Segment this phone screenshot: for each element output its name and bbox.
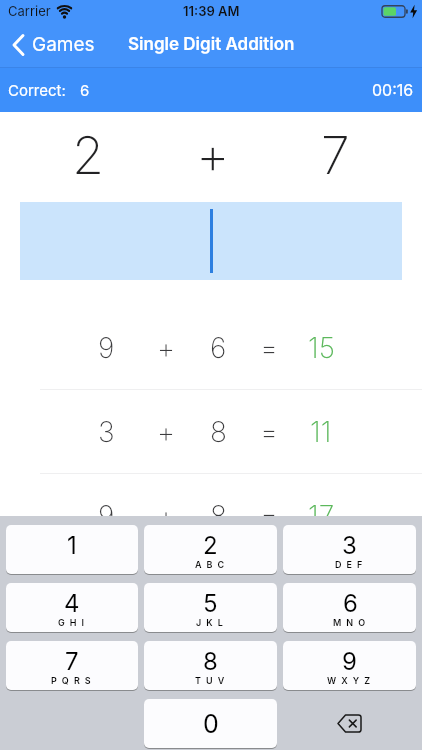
staticText: P Q R S [51,675,93,686]
staticText: 11 [310,415,332,449]
button[interactable]: 5 [144,583,277,632]
staticText: 8 [203,647,218,676]
button[interactable]: 3 [283,525,416,574]
staticText: + [157,415,176,449]
staticText: 9 [98,331,115,365]
button[interactable]: 6 [283,583,416,632]
button[interactable] [283,699,416,748]
button[interactable]: 4 [6,583,138,632]
staticText: T U V [195,675,226,686]
staticText: M N O [333,617,367,628]
staticText: 0 [203,709,219,739]
button[interactable] [20,202,402,280]
button[interactable]: 2 [144,525,277,574]
staticText: 7 [321,124,350,187]
staticText: 3 [342,531,357,560]
staticText: J K L [196,617,225,628]
staticText: Single Digit Addition [128,34,295,55]
staticText: 11:39 AM [183,3,240,19]
staticText: + [157,331,176,365]
staticText: 17 [308,499,335,533]
staticText: + [157,499,176,533]
button[interactable]: 7 [6,641,138,690]
button[interactable]: 0 [144,699,277,748]
button[interactable]: Games [12,33,95,56]
staticText: = [260,331,279,365]
staticText: 00:16 [372,80,414,99]
staticText: 8 [210,499,227,533]
staticText: 2 [72,124,105,187]
staticText: + [196,124,230,187]
staticText: 9 [98,499,115,533]
button[interactable]: 9 [283,641,416,690]
staticText: Correct: [8,81,66,99]
staticText: 7 [65,647,79,676]
staticText: W X Y Z [327,675,372,686]
staticText: Games [32,33,95,56]
staticText: 6 [80,81,90,99]
staticText: 4 [64,589,80,618]
staticText: 1 [67,531,77,560]
staticText: 5 [203,589,218,618]
staticText: A B C [195,559,226,570]
staticText: 8 [210,415,227,449]
staticText: G H I [58,617,86,628]
staticText: 2 [203,531,218,560]
staticText: D E F [335,559,364,570]
staticText: 9 [342,647,357,676]
staticText: 3 [98,415,115,449]
staticText: = [260,415,279,449]
staticText: 6 [343,589,358,618]
staticText: Carrier [8,3,51,19]
button[interactable]: 8 [144,641,277,690]
staticText: = [260,499,279,533]
staticText: 15 [308,331,335,365]
button[interactable]: 1 [6,525,138,574]
staticText: 6 [210,331,227,365]
